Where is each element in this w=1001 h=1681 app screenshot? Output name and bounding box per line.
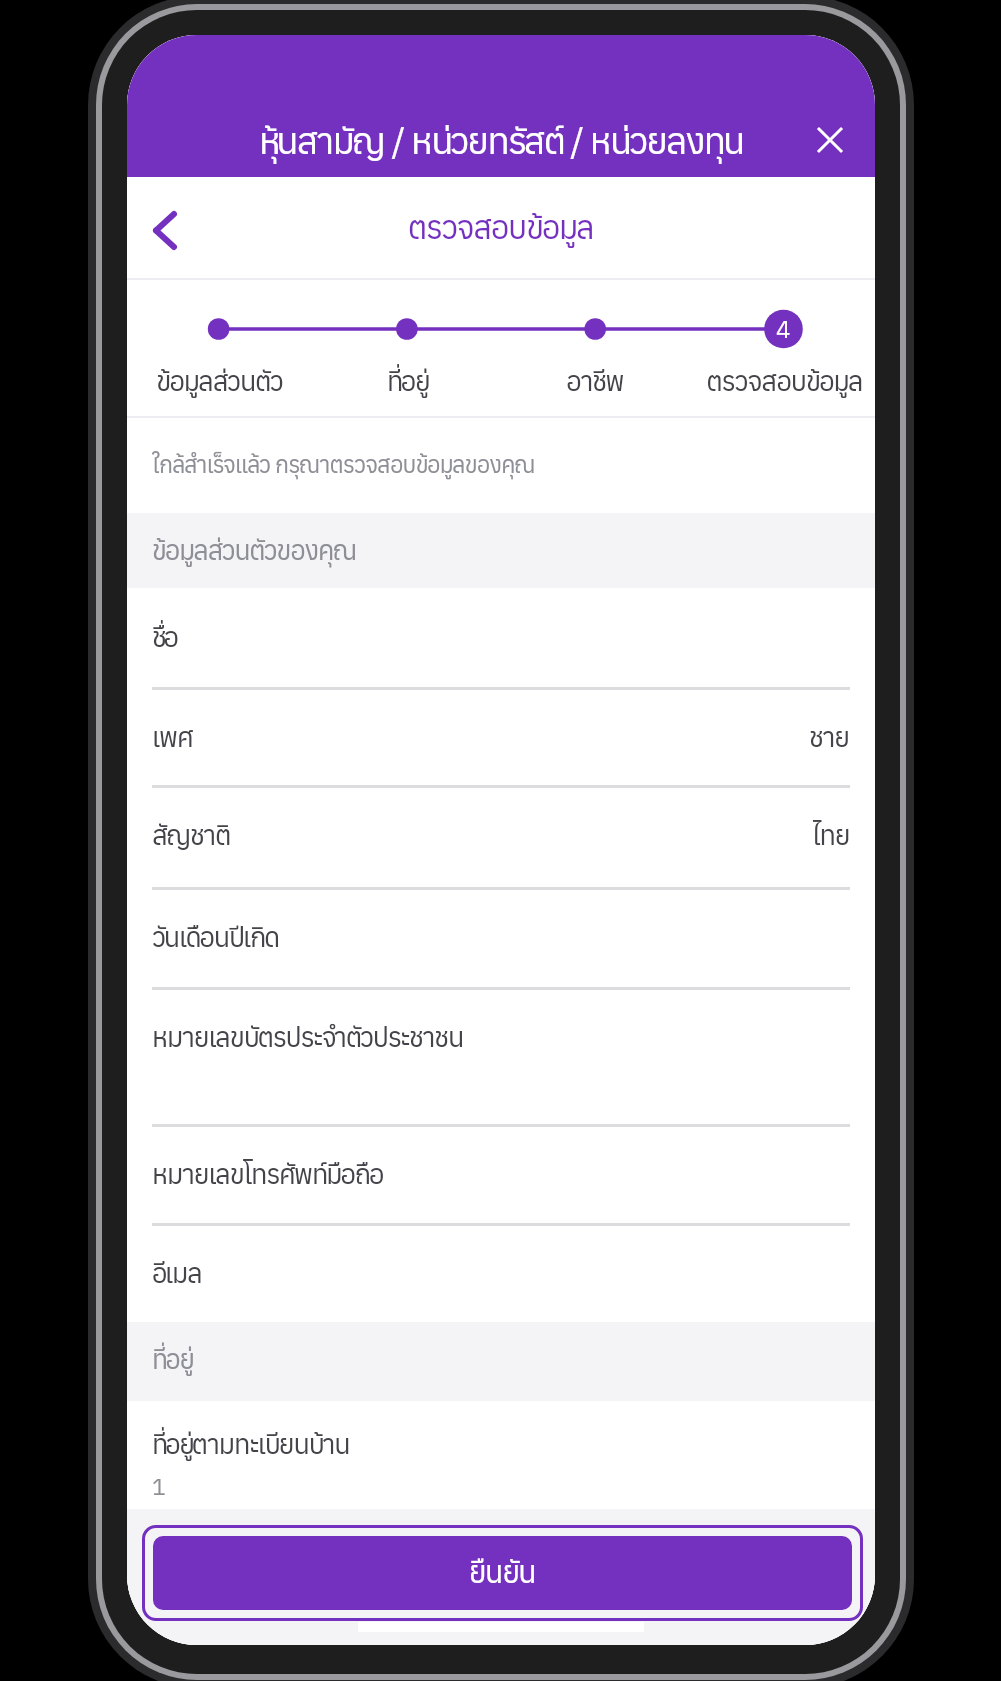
button[interactable]: Back: [127, 192, 203, 268]
staticText: ใกล้สำเร็จแล้ว กรุณาตรวจสอบข้อมูลของคุณ: [152, 449, 535, 479]
button[interactable]: ยืนยัน: [153, 1536, 852, 1610]
button[interactable]: Close: [803, 113, 857, 167]
staticText: 1: [152, 1471, 166, 1501]
staticText: ข้อมูลส่วนตัวของคุณ: [152, 533, 357, 567]
staticText: หมายเลขบัตรประจำตัวประชาชน: [152, 1019, 464, 1054]
button[interactable]: ชื่อ: [127, 588, 875, 688]
button[interactable]: หมายเลขบัตรประจำตัวประชาชน: [127, 988, 875, 1125]
button[interactable]: หมายเลขโทรศัพท์มือถือ: [127, 1125, 875, 1224]
staticText: หมายเลขโทรศัพท์มือถือ: [152, 1156, 384, 1191]
staticText: ไทย: [812, 817, 850, 852]
staticText: ตรวจสอบข้อมูล: [408, 206, 594, 248]
staticText: ยืนยัน: [469, 1552, 536, 1591]
staticText: ที่อยู่: [152, 1342, 193, 1376]
button[interactable]: อีเมล: [127, 1224, 875, 1322]
staticText: หุ้นสามัญ / หน่วยทรัสต์ / หน่วยลงทุน: [259, 117, 744, 164]
staticText: ข้อมูลส่วนตัว: [156, 363, 283, 398]
staticText: สัญชาติ: [152, 817, 230, 852]
staticText: อาชีพ: [566, 363, 624, 398]
button[interactable]: สัญชาติ: [127, 786, 875, 888]
button[interactable]: เพศ: [127, 688, 875, 786]
staticText: ที่อยู่: [387, 363, 428, 398]
button[interactable]: วันเดือนปีเกิด: [127, 888, 875, 988]
button[interactable]: ที่อยู่ตามทะเบียนบ้าน: [127, 1401, 875, 1509]
staticText: ตรวจสอบข้อมูล: [706, 363, 863, 398]
staticText: 4: [776, 313, 791, 344]
staticText: ชื่อ: [152, 619, 178, 654]
staticText: วันเดือนปีเกิด: [152, 919, 280, 954]
staticText: เพศ: [152, 719, 194, 754]
staticText: ที่อยู่ตามทะเบียนบ้าน: [152, 1426, 350, 1461]
staticText: อีเมล: [152, 1255, 202, 1290]
staticText: ชาย: [809, 719, 850, 754]
